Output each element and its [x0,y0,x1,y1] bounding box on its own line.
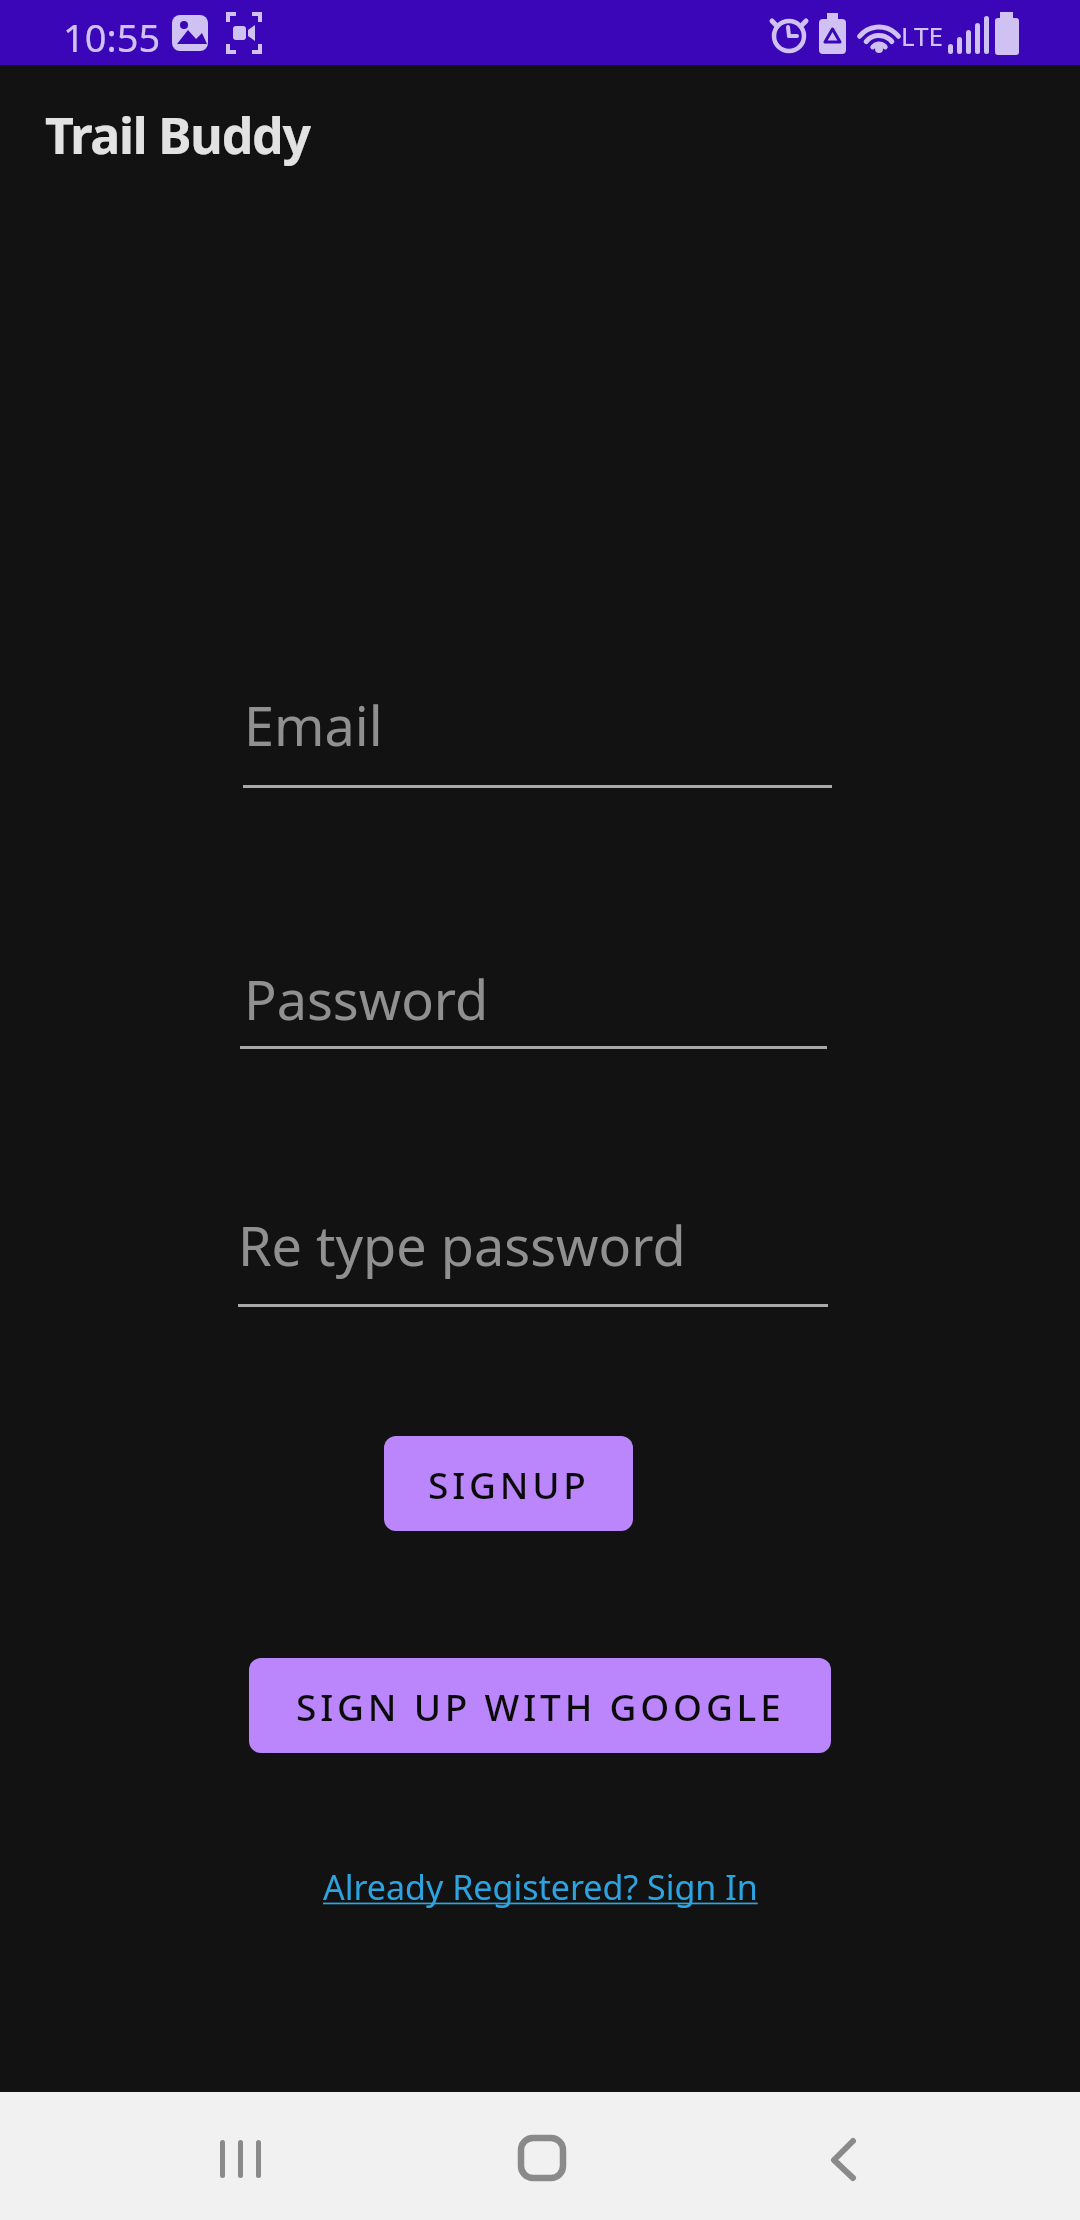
button[interactable]: Password [218,935,858,1095]
staticText: 10:55 [63,11,161,63]
button[interactable]: Re type password [215,1180,855,1350]
button[interactable] [0,2092,360,2220]
staticText: SIGNUP [428,1459,590,1509]
staticText: Password [244,962,489,1036]
button[interactable]: SIGN UP WITH GOOGLE [249,1658,831,1753]
button[interactable]: SIGNUP [384,1436,633,1531]
button[interactable]: Email [220,660,860,820]
staticText: Email [244,688,383,762]
button[interactable] [360,2092,720,2220]
staticText: Trail Buddy [45,101,310,169]
staticText: SIGN UP WITH GOOGLE [296,1681,785,1731]
staticText: Re type password [238,1208,686,1282]
button[interactable] [720,2092,1080,2220]
staticText: LTE [901,18,944,53]
button[interactable]: Already Registered? Sign In [323,1864,758,1910]
